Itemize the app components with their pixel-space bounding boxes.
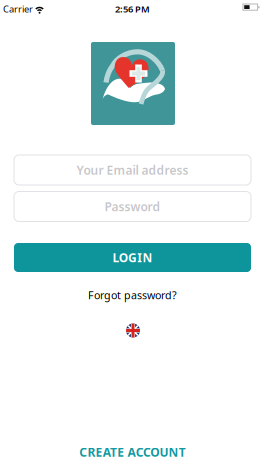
staticText: 2:56 PM [115, 3, 150, 15]
staticText: CREATE ACCOUNT [79, 444, 186, 460]
staticText: LOGIN [112, 249, 153, 265]
button[interactable]: LOGIN [14, 243, 251, 272]
button[interactable]: Password [14, 191, 251, 221]
staticText: Forgot password? [88, 288, 177, 302]
button[interactable]: CREATE ACCOUNT [79, 444, 186, 460]
staticText: Your Email address [76, 162, 188, 178]
button[interactable]: Your Email address [14, 155, 251, 185]
button[interactable]: Forgot password? [88, 288, 177, 302]
staticText: Carrier [3, 3, 33, 15]
staticText: Password [104, 198, 160, 214]
button[interactable]: Change language [126, 323, 140, 337]
